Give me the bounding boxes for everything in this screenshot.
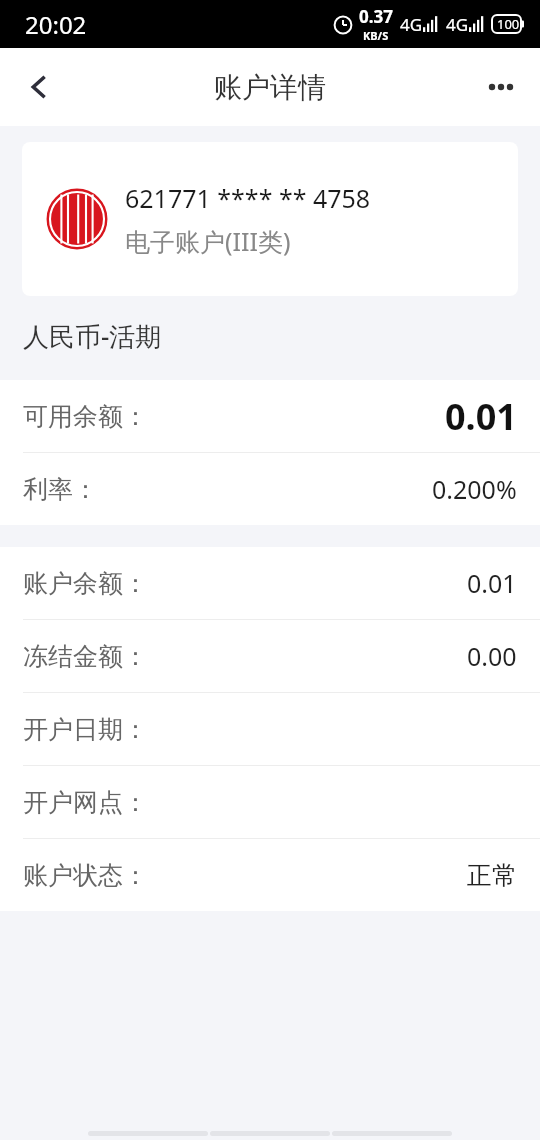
staticText: 4G	[400, 13, 423, 36]
button[interactable]: 账户状态：	[0, 839, 540, 911]
staticText: KB/S	[363, 28, 389, 43]
staticText: 20:02	[25, 8, 87, 41]
button[interactable]: 利率：	[0, 453, 540, 525]
staticText: 0.01	[467, 566, 517, 600]
staticText: 冻结金额：	[23, 641, 148, 672]
staticText: 账户详情	[214, 70, 326, 105]
staticText: 电子账户(III类)	[125, 224, 291, 258]
staticText: 0.01	[445, 392, 517, 441]
button[interactable]: 账户余额：	[0, 547, 540, 619]
button[interactable]: 开户日期：	[0, 693, 540, 765]
staticText: 4G	[446, 13, 469, 36]
button[interactable]: 冻结金额：	[0, 620, 540, 692]
staticText: 正常	[467, 860, 517, 891]
button[interactable]: 可用余额：	[0, 380, 540, 452]
button[interactable]: More options	[462, 48, 540, 126]
staticText: 利率：	[23, 474, 98, 505]
staticText: 账户状态：	[23, 860, 148, 891]
staticText: 账户余额：	[23, 568, 148, 599]
staticText: 100	[497, 15, 520, 33]
staticText: 0.200%	[432, 472, 517, 506]
staticText: 开户网点：	[23, 787, 148, 818]
button[interactable]: 开户网点：	[0, 766, 540, 838]
staticText: 621771 **** ** 4758	[125, 181, 371, 215]
staticText: 0.37	[359, 5, 393, 28]
staticText: 可用余额：	[23, 401, 148, 432]
button[interactable]: Back	[0, 48, 78, 126]
staticText: 开户日期：	[23, 714, 148, 745]
staticText: 人民币-活期	[23, 318, 162, 354]
staticText: 0.00	[467, 639, 517, 673]
button[interactable]: 621771 **** ** 4758	[22, 142, 518, 296]
